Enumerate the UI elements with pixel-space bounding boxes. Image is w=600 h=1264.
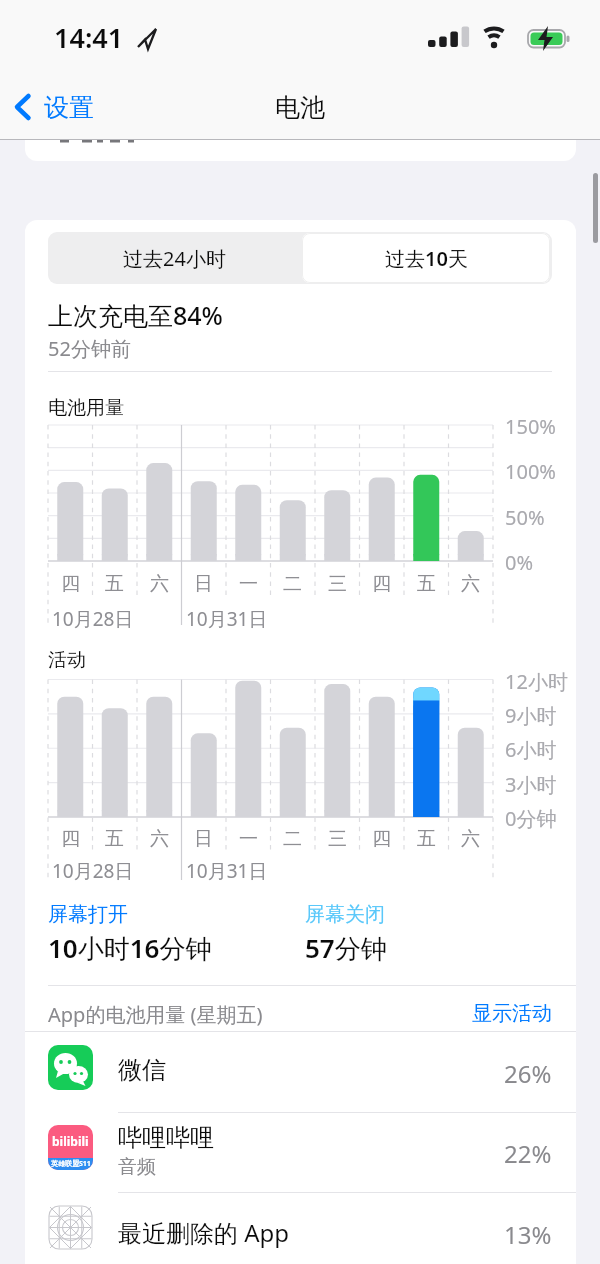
staticText: 二: [283, 827, 302, 851]
staticText: bilibili: [52, 1133, 89, 1149]
staticText: 电池用量: [48, 396, 124, 420]
staticText: 12小时: [505, 668, 568, 695]
staticText: 0分钟: [505, 805, 557, 832]
staticText: 二: [283, 572, 302, 596]
staticText: 日: [194, 827, 213, 851]
staticText: 四: [372, 827, 391, 851]
staticText: 显示活动: [472, 1001, 552, 1026]
staticText: 14:41: [54, 19, 124, 56]
staticText: 52分钟前: [48, 335, 131, 362]
button[interactable]: 设置: [44, 92, 94, 123]
staticText: 100%: [505, 458, 556, 485]
staticText: 微信: [118, 1055, 166, 1085]
staticText: 音频: [118, 1155, 156, 1179]
button[interactable]: [25, 1032, 576, 1112]
button[interactable]: 过去24小时: [48, 232, 300, 284]
staticText: 一: [239, 572, 258, 596]
staticText: 10月31日: [186, 606, 268, 632]
staticText: 22%: [504, 1137, 552, 1170]
staticText: 最近删除的 App: [118, 1216, 290, 1249]
staticText: 三: [328, 572, 347, 596]
staticText: 13%: [504, 1218, 552, 1251]
staticText: 四: [372, 572, 391, 596]
button[interactable]: [13, 94, 33, 122]
button[interactable]: [302, 233, 550, 283]
staticText: 日: [194, 572, 213, 596]
button[interactable]: [25, 1113, 576, 1193]
button[interactable]: [25, 1193, 576, 1264]
staticText: 活动: [48, 648, 86, 672]
staticText: 设置: [44, 92, 94, 123]
staticText: 9小时: [505, 702, 557, 729]
staticText: 四: [61, 827, 80, 851]
staticText: 电池: [275, 92, 325, 123]
staticText: 10月31日: [186, 858, 268, 884]
staticText: 10月28日: [52, 858, 134, 884]
staticText: 26%: [504, 1057, 552, 1090]
staticText: 五: [417, 827, 436, 851]
staticText: App的电池用量 (星期五): [48, 1001, 263, 1028]
staticText: 三: [328, 827, 347, 851]
staticText: 屏幕打开: [48, 902, 128, 927]
staticText: 57分钟: [305, 930, 387, 966]
staticText: 10小时16分钟: [48, 930, 212, 966]
staticText: 0%: [505, 549, 534, 576]
staticText: 六: [150, 572, 169, 596]
staticText: 50%: [505, 504, 545, 531]
staticText: 3小时: [505, 771, 557, 798]
button[interactable]: 显示活动: [352, 1001, 552, 1026]
staticText: 哔哩哔哩: [118, 1123, 214, 1153]
staticText: 过去24小时: [123, 245, 226, 272]
staticText: 四: [61, 572, 80, 596]
staticText: 六: [461, 827, 480, 851]
staticText: 六: [150, 827, 169, 851]
staticText: 150%: [505, 413, 556, 440]
staticText: 6小时: [505, 736, 557, 763]
staticText: 过去10天: [385, 245, 468, 272]
staticText: 英雄联盟S11: [51, 1159, 91, 1169]
staticText: 10月28日: [52, 606, 134, 632]
staticText: 五: [105, 827, 124, 851]
staticText: 五: [105, 572, 124, 596]
staticText: 六: [461, 572, 480, 596]
staticText: 五: [417, 572, 436, 596]
staticText: 屏幕关闭: [305, 902, 385, 927]
staticText: 上次充电至84%: [48, 298, 223, 332]
staticText: 一: [239, 827, 258, 851]
